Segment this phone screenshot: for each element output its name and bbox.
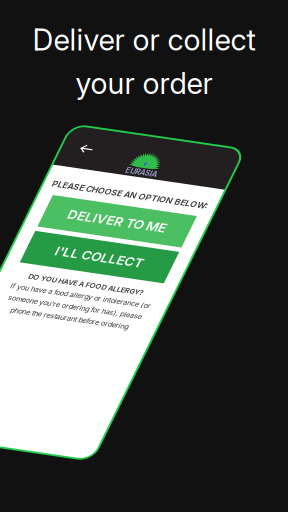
staticText: Deliver or collect (32, 22, 255, 57)
staticText: your order (75, 65, 212, 101)
button[interactable]: DELIVER TO ME (15, 78, 163, 114)
staticText: DELIVER TO ME (38, 88, 139, 104)
button[interactable]: Back (0, 0, 42, 37)
staticText: EURASIA (73, 36, 105, 45)
staticText: DO YOU HAVE A FOOD ALLERGY? (30, 164, 148, 173)
staticText: If you have a food allergy or intoleranc… (17, 177, 161, 212)
button[interactable]: I'LL COLLECT (15, 119, 163, 155)
staticText: I'LL COLLECT (44, 129, 134, 145)
